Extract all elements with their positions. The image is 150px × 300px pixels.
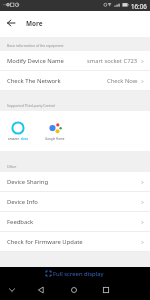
button[interactable]: amazon xyxy=(1,111,35,151)
button[interactable]: Full screen display xyxy=(0,267,150,280)
staticText: Check The Network xyxy=(7,77,61,85)
button[interactable]: Modify Device Name xyxy=(0,51,150,71)
button[interactable]: Device Info xyxy=(0,192,150,212)
staticText: amazon xyxy=(8,137,20,141)
staticText: Device Info xyxy=(7,198,38,206)
staticText: Device Sharing xyxy=(7,178,49,186)
button[interactable]: Device Sharing xyxy=(0,172,150,192)
staticText: Basic information of the equipment xyxy=(7,43,64,48)
button[interactable]: Hide keyboard xyxy=(2,280,22,300)
staticText: Supported Third-party Control xyxy=(7,103,56,108)
button[interactable]: Back xyxy=(31,280,51,300)
button[interactable]: Back xyxy=(0,10,22,36)
staticText: Feedback xyxy=(7,218,34,226)
button[interactable]: Google Home xyxy=(38,111,72,151)
button[interactable]: Recents xyxy=(96,280,116,300)
staticText: alexa xyxy=(20,137,29,141)
button[interactable]: Home xyxy=(64,280,84,300)
staticText: smart socket C723 xyxy=(87,57,138,65)
staticText: Check Now xyxy=(107,77,138,85)
staticText: Check for Firmware Update xyxy=(7,238,83,246)
staticText: More xyxy=(26,19,43,28)
staticText: Other xyxy=(7,164,17,169)
button[interactable]: Feedback xyxy=(0,212,150,232)
button[interactable]: Check The Network xyxy=(0,71,150,91)
staticText: 16:06 xyxy=(131,2,147,10)
button[interactable]: Check for Firmware Update xyxy=(0,232,150,252)
staticText: Modify Device Name xyxy=(7,57,64,65)
staticText: Full screen display xyxy=(53,270,104,278)
staticText: Google Home xyxy=(45,137,65,141)
